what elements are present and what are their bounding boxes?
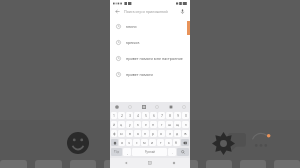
button[interactable]: . [168, 148, 176, 156]
staticText: к [137, 122, 139, 127]
button[interactable]: 6 [150, 112, 157, 119]
button[interactable]: и [149, 139, 156, 146]
button[interactable]: щ [174, 121, 181, 128]
staticText: , [127, 150, 128, 155]
button[interactable]: ч [126, 139, 132, 146]
button[interactable]: с [133, 139, 140, 146]
staticText: и [151, 140, 154, 145]
button[interactable]: Back [118, 158, 134, 168]
button[interactable]: 3 [126, 112, 133, 119]
button[interactable]: т [157, 139, 164, 146]
button[interactable]: ?1☺ [111, 148, 122, 156]
button[interactable]: н [150, 121, 157, 128]
staticText: ж [184, 131, 187, 136]
staticText: ц [120, 122, 123, 127]
staticText: привет помоги мне настроение [126, 56, 183, 61]
staticText: л [169, 131, 171, 136]
button[interactable]: Русский [132, 148, 167, 156]
button[interactable]: Keyboard settings [167, 103, 174, 110]
staticText: 3 [129, 113, 131, 118]
button[interactable]: е [142, 121, 149, 128]
button[interactable]: Back [114, 8, 121, 15]
button[interactable]: в [126, 130, 133, 137]
button[interactable]: Sticker [153, 103, 160, 110]
staticText: Русский [145, 150, 155, 154]
button[interactable]: л [166, 130, 173, 137]
staticText: Поиск игр и приложений [124, 9, 179, 14]
button[interactable]: Expand [180, 103, 187, 110]
button[interactable]: привет помоги мне настроение [110, 50, 190, 66]
button[interactable]: ж [182, 130, 189, 137]
button[interactable]: Clipboard [140, 103, 147, 110]
staticText: 7 [161, 113, 163, 118]
button[interactable]: я [119, 139, 125, 146]
staticText: е [145, 122, 147, 127]
button[interactable]: Back [110, 6, 190, 16]
button[interactable]: , [123, 148, 131, 156]
staticText: 1 [113, 113, 115, 118]
staticText: м [143, 140, 146, 145]
button[interactable]: Voice search [179, 8, 186, 15]
button[interactable]: ь [165, 139, 172, 146]
button[interactable]: крючок [110, 34, 190, 50]
button[interactable]: Emoji reactions [64, 129, 92, 157]
button[interactable]: д [174, 130, 181, 137]
button[interactable]: м [141, 139, 148, 146]
button[interactable]: Home [142, 158, 158, 168]
button[interactable]: 4 [134, 112, 141, 119]
button[interactable]: 1 [111, 112, 117, 119]
button[interactable]: к [134, 121, 141, 128]
staticText: 8 [169, 113, 171, 118]
button[interactable]: 2 [118, 112, 125, 119]
button[interactable]: Subtitles [224, 129, 250, 155]
staticText: книги [126, 24, 137, 29]
button[interactable]: привет помоги [110, 66, 190, 82]
button[interactable]: о [158, 130, 165, 137]
button[interactable]: б [173, 139, 180, 146]
staticText: ш [168, 122, 172, 127]
staticText: т [160, 140, 162, 145]
staticText: у [129, 122, 131, 127]
button[interactable]: ц [118, 121, 125, 128]
button[interactable]: Recents [166, 158, 182, 168]
button[interactable]: Google assistant [113, 103, 120, 110]
staticText: н [152, 122, 155, 127]
button[interactable]: 7 [158, 112, 165, 119]
button[interactable]: 0 [182, 112, 189, 119]
staticText: 0 [185, 113, 187, 118]
button[interactable]: г [158, 121, 165, 128]
button[interactable]: Settings [208, 128, 238, 158]
staticText: а [137, 131, 139, 136]
button[interactable]: й [111, 121, 117, 128]
staticText: крючок [126, 40, 140, 45]
staticText: 5 [145, 113, 147, 118]
staticText: ь [168, 140, 170, 145]
staticText: г [161, 122, 163, 127]
staticText: ы [120, 131, 123, 136]
button[interactable]: р [150, 130, 157, 137]
button[interactable]: More options [246, 128, 276, 158]
staticText: п [144, 131, 147, 136]
button[interactable]: Backspace [181, 139, 189, 146]
button[interactable]: 5 [142, 112, 149, 119]
staticText: щ [176, 122, 180, 127]
button[interactable]: у [126, 121, 133, 128]
staticText: . [172, 150, 173, 155]
button[interactable]: 9 [174, 112, 181, 119]
button[interactable]: з [182, 121, 189, 128]
button[interactable]: п [142, 130, 149, 137]
button[interactable]: ш [166, 121, 173, 128]
staticText: 4 [137, 113, 139, 118]
button[interactable]: 8 [166, 112, 173, 119]
staticText: привет помоги [126, 72, 153, 77]
button[interactable]: а [134, 130, 141, 137]
button[interactable]: ы [118, 130, 125, 137]
staticText: ф [113, 131, 116, 136]
button[interactable]: Search [177, 148, 189, 156]
button[interactable]: ф [111, 130, 117, 137]
button[interactable]: книги [110, 18, 190, 34]
staticText: б [175, 140, 178, 145]
button[interactable]: GIF [126, 103, 133, 110]
button[interactable]: Shift [111, 139, 118, 146]
staticText: й [113, 122, 116, 127]
